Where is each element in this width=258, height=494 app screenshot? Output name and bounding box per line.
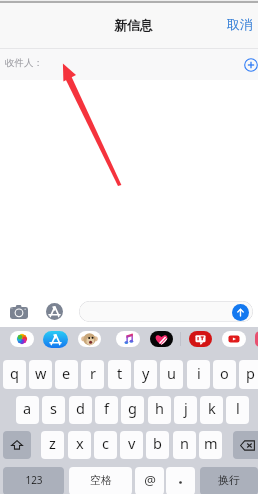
staticText: o <box>220 363 229 383</box>
staticText: 收件人： <box>5 57 43 69</box>
button[interactable]: Music <box>115 327 141 351</box>
staticText: 换行 <box>218 473 240 487</box>
button[interactable]: w <box>29 360 52 389</box>
button[interactable]: Images <box>187 327 213 351</box>
button[interactable]: h <box>148 396 171 424</box>
staticText: p <box>246 363 255 383</box>
button[interactable]: t <box>108 360 131 389</box>
staticText: 123 <box>25 473 43 487</box>
button[interactable]: 取消 <box>222 12 258 36</box>
staticText: y <box>142 363 150 383</box>
button[interactable]: Send <box>232 304 249 321</box>
staticText: e <box>62 363 71 383</box>
button[interactable]: g <box>121 396 144 424</box>
button[interactable]: 空格 <box>69 467 132 494</box>
staticText: c <box>102 433 109 453</box>
button[interactable]: Period <box>166 467 195 494</box>
button[interactable]: p <box>239 360 258 389</box>
staticText: m <box>204 433 218 453</box>
staticText: v <box>128 433 136 453</box>
button[interactable]: z <box>41 431 64 459</box>
staticText: z <box>49 433 56 453</box>
button[interactable]: YouTube <box>221 327 247 351</box>
staticText: x <box>76 433 84 453</box>
button[interactable]: a <box>16 396 39 424</box>
button[interactable]: @ <box>135 467 164 494</box>
staticText: f <box>104 398 109 418</box>
button[interactable]: n <box>173 431 196 459</box>
button[interactable]: Add recipient <box>243 57 258 72</box>
button[interactable]: b <box>146 431 169 459</box>
button[interactable]: s <box>42 396 65 424</box>
staticText: 新信息 <box>114 17 153 33</box>
button[interactable]: Photos <box>9 327 35 351</box>
button[interactable]: m <box>199 431 222 459</box>
button[interactable]: Digital Touch <box>148 327 174 351</box>
staticText: u <box>167 363 176 383</box>
button[interactable]: Camera <box>6 299 32 325</box>
button[interactable]: l <box>226 396 249 424</box>
button[interactable]: e <box>55 360 78 389</box>
staticText: @ <box>144 471 156 489</box>
staticText: q <box>10 363 19 383</box>
staticText: r <box>90 363 96 383</box>
staticText: w <box>35 363 47 383</box>
button[interactable]: x <box>68 431 91 459</box>
button[interactable]: y <box>134 360 157 389</box>
button[interactable]: c <box>94 431 117 459</box>
button[interactable]: d <box>69 396 92 424</box>
button[interactable]: q <box>3 360 26 389</box>
button[interactable] <box>79 301 253 322</box>
staticText: b <box>153 433 162 453</box>
staticText: h <box>155 398 164 418</box>
button[interactable]: i <box>187 360 210 389</box>
staticText: t <box>117 363 123 383</box>
button[interactable]: 123 <box>3 467 64 494</box>
button[interactable]: App Store <box>42 327 68 351</box>
button[interactable]: o <box>213 360 236 389</box>
button[interactable]: 换行 <box>200 467 258 494</box>
button[interactable]: j <box>174 396 197 424</box>
staticText: a <box>23 398 32 418</box>
button[interactable]: App Store <box>41 298 67 324</box>
staticText: s <box>50 398 57 418</box>
staticText: n <box>180 433 189 453</box>
button[interactable]: u <box>160 360 183 389</box>
staticText: j <box>184 398 188 418</box>
staticText: d <box>76 398 85 418</box>
staticText: k <box>208 398 216 418</box>
button[interactable]: r <box>81 360 104 389</box>
staticText: i <box>197 363 201 383</box>
button[interactable]: v <box>120 431 143 459</box>
button[interactable]: Memoji <box>76 327 102 351</box>
staticText: l <box>236 398 240 418</box>
button[interactable]: k <box>200 396 223 424</box>
staticText: 取消 <box>227 16 253 32</box>
staticText: g <box>128 398 137 418</box>
button[interactable]: f <box>95 396 118 424</box>
button[interactable]: More apps <box>255 331 258 347</box>
button[interactable]: Shift <box>3 431 31 459</box>
button[interactable]: Delete <box>233 431 258 459</box>
staticText: 空格 <box>90 473 112 487</box>
